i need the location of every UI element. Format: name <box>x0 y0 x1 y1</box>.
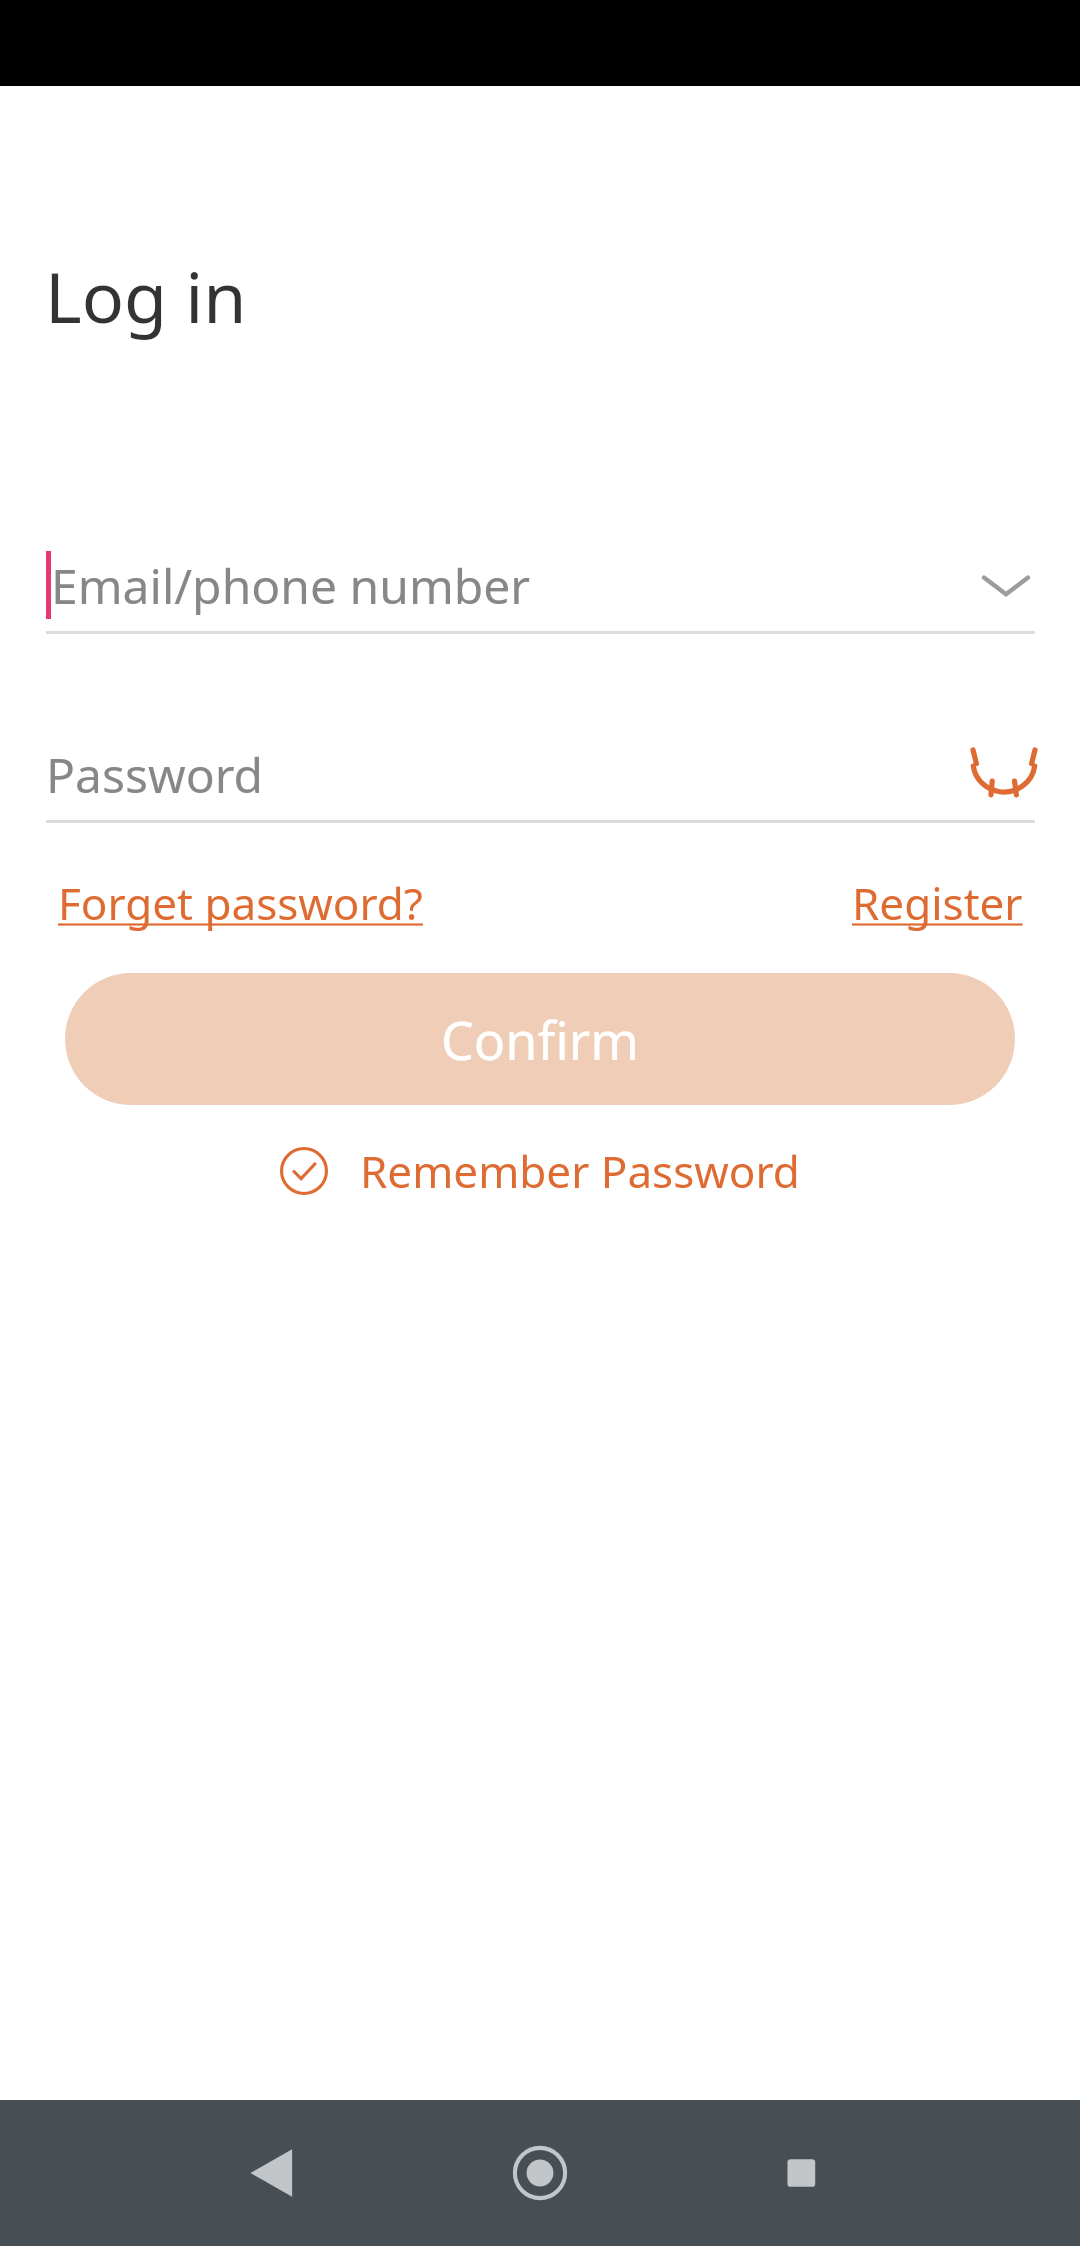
staticText: Log in <box>45 248 247 343</box>
button[interactable]: Register <box>852 873 1023 933</box>
staticText: Password <box>46 742 264 807</box>
staticText: Confirm <box>441 1004 639 1075</box>
button[interactable]: Email/phone number <box>46 539 1035 631</box>
staticText: Remember Password <box>360 1141 800 1201</box>
staticText: Register <box>852 873 1023 933</box>
other: Show password <box>973 754 1035 794</box>
other: Choose saved account <box>977 556 1035 614</box>
button[interactable]: Forget password? <box>58 873 423 933</box>
button[interactable]: Remember Password <box>280 1141 800 1201</box>
staticText: Forget password? <box>58 873 423 933</box>
staticText: Email/phone number <box>51 553 531 618</box>
button[interactable]: Confirm <box>65 973 1015 1105</box>
button[interactable]: Password <box>46 728 1035 820</box>
other: System navigation <box>0 2100 1080 2246</box>
